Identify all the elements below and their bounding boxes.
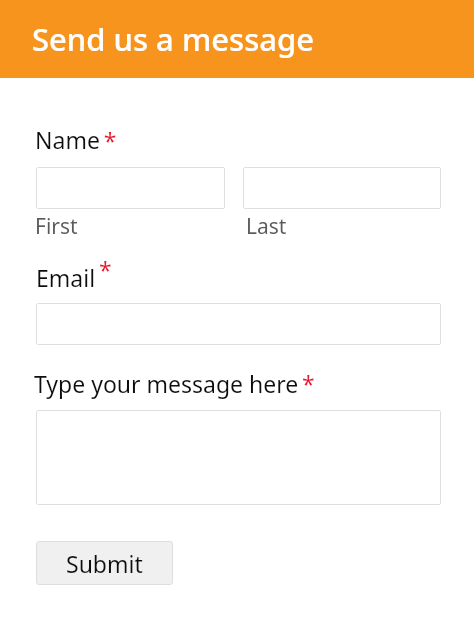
staticText: Type your message here *	[34, 368, 315, 400]
button[interactable]: First name	[36, 167, 225, 209]
button[interactable]: Message	[36, 410, 441, 505]
staticText: First	[35, 212, 78, 241]
staticText: Email *	[36, 254, 112, 293]
button[interactable]: Submit	[36, 541, 173, 585]
staticText: Submit	[66, 548, 143, 579]
staticText: Last	[246, 212, 287, 241]
staticText: Name *	[35, 124, 117, 157]
button[interactable]: Email	[36, 303, 441, 345]
staticText: Send us a message	[32, 18, 314, 60]
button[interactable]: Last name	[243, 167, 441, 209]
